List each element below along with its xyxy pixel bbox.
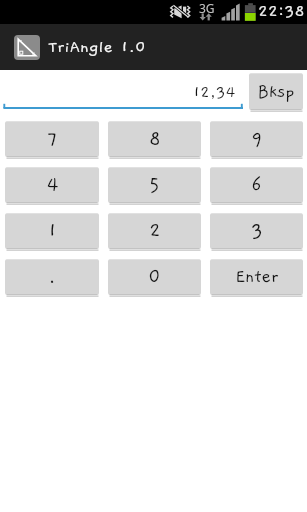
button[interactable]: 3 [210,213,303,251]
button[interactable]: Bksp [249,73,303,112]
staticText: 4 [46,174,59,196]
staticText: 8 [149,128,161,150]
staticText: 0 [148,266,161,288]
button[interactable]: 9 [210,121,303,159]
staticText: 2 [149,220,161,242]
button[interactable]: 6 [210,167,303,205]
staticText: 9 [251,128,263,150]
staticText: Enter [235,267,279,287]
staticText: 12,34 [193,83,236,101]
staticText: Bksp [257,82,295,102]
button[interactable]: 8 [108,121,201,159]
button[interactable]: 5 [108,167,201,205]
staticText: TriAngle 1.0 [48,38,146,57]
staticText: 5 [149,174,160,196]
button[interactable]: 1 [5,213,99,251]
button[interactable]: TriAngle app icon [14,35,40,60]
staticText: 3 [251,220,263,242]
button[interactable]: 2 [108,213,201,251]
button[interactable]: 0 [108,259,201,297]
staticText: . [48,266,56,288]
staticText: 22:38 [258,2,305,21]
button[interactable]: 4 [5,167,99,205]
staticText: 7 [47,128,58,150]
button[interactable]: 7 [5,121,99,159]
staticText: 6 [251,174,262,196]
button[interactable]: . [5,259,99,297]
staticText: 3G [199,0,215,16]
button[interactable]: Enter [210,259,303,297]
staticText: 1 [48,220,57,242]
